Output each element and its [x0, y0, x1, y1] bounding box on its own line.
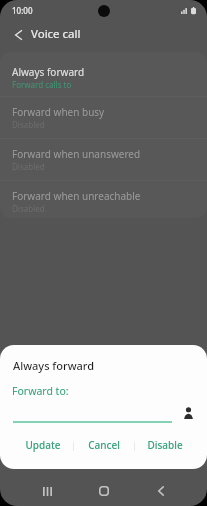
button[interactable]: Cancel: [74, 433, 134, 457]
button[interactable]: Always forward: [0, 52, 207, 96]
staticText: Disabled: [12, 161, 45, 172]
staticText: Disabled: [12, 203, 45, 214]
button[interactable]: Home: [87, 474, 121, 506]
staticText: Forward when unanswered: [12, 147, 141, 161]
staticText: Disabled: [12, 119, 45, 130]
staticText: Always forward: [12, 65, 85, 79]
button[interactable]: Navigate up: [4, 26, 32, 50]
staticText: Forward when unreachable: [12, 189, 141, 203]
staticText: Forward to:: [12, 384, 69, 398]
staticText: Voice call: [31, 26, 81, 42]
staticText: 10:00: [12, 5, 33, 16]
button[interactable]: Forward when unreachable: [0, 180, 207, 218]
button[interactable]: Forward when busy: [0, 96, 207, 138]
button[interactable]: Update: [13, 433, 73, 457]
staticText: Cancel: [88, 438, 120, 452]
button[interactable]: Choose contact: [182, 405, 195, 422]
staticText: Always forward: [13, 358, 95, 373]
staticText: Update: [25, 438, 61, 452]
button[interactable]: Back: [144, 474, 178, 506]
staticText: Forward when busy: [12, 105, 105, 119]
button[interactable]: Forward when unanswered: [0, 138, 207, 180]
staticText: Forward calls to: [12, 79, 72, 90]
button[interactable]: Recent apps: [30, 474, 64, 506]
staticText: Disable: [147, 438, 183, 452]
button[interactable]: Disable: [135, 433, 195, 457]
